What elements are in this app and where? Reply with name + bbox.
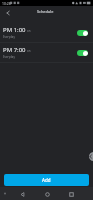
button[interactable]: PM 7:00: [0, 43, 93, 62]
staticText: on: [27, 49, 31, 53]
staticText: Everyday: [3, 55, 15, 59]
staticText: PM 7:00: [3, 46, 26, 54]
button[interactable]: Add: [4, 174, 89, 186]
button[interactable]: PM 1:00: [0, 23, 93, 42]
button[interactable]: Back: [16, 188, 28, 200]
staticText: 10:28: [2, 1, 11, 6]
staticText: PM 1:00: [3, 26, 26, 34]
button[interactable]: Toggle alarm: [77, 30, 88, 36]
button[interactable]: Recent apps: [65, 188, 77, 200]
button[interactable]: Toggle alarm: [77, 50, 88, 56]
button[interactable]: Home: [41, 188, 53, 200]
staticText: Schedule: [37, 9, 54, 14]
button[interactable]: Scroll handle: [89, 152, 93, 161]
button[interactable]: Back: [0, 8, 16, 18]
staticText: Add: [42, 177, 51, 183]
staticText: on: [27, 29, 31, 33]
staticText: Everyday: [3, 35, 15, 39]
